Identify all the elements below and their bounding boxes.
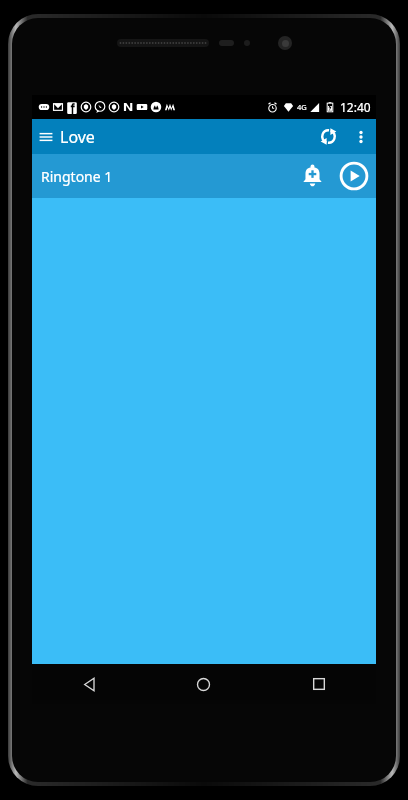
staticText: 4G	[297, 102, 307, 112]
button[interactable]: Recent apps	[261, 664, 376, 704]
button[interactable]: Play	[332, 154, 376, 198]
staticText: Love	[60, 126, 95, 148]
other: Open navigation drawer	[39, 130, 53, 144]
button[interactable]: More options	[346, 119, 376, 154]
button[interactable]: Open navigation drawer	[32, 119, 103, 154]
button[interactable]: Refresh	[310, 119, 346, 154]
button[interactable]: Ringtone 1	[32, 154, 376, 198]
staticText: 12:40	[340, 99, 371, 115]
button[interactable]: Home	[146, 664, 261, 704]
staticText: Ringtone 1	[41, 167, 113, 186]
button[interactable]: Set as ringtone	[292, 154, 332, 198]
button[interactable]: Back	[32, 664, 146, 704]
